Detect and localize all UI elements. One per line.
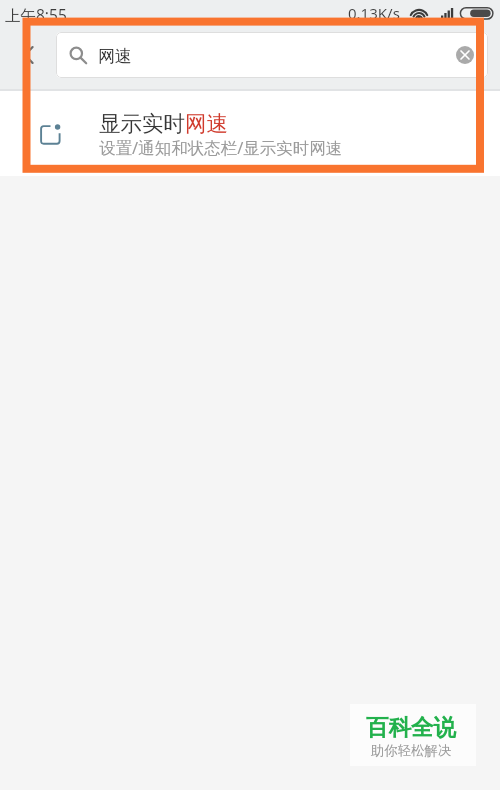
button[interactable]: 网速: [56, 32, 488, 78]
button[interactable]: Clear search: [456, 46, 474, 64]
staticText: 显示实时网速: [99, 110, 228, 137]
staticText: 百科全说: [366, 713, 456, 741]
staticText: 0.13K/s: [348, 3, 400, 23]
button[interactable]: Back: [12, 38, 46, 72]
staticText: 上午8:55: [5, 4, 67, 25]
staticText: 助你轻松解决: [371, 742, 452, 759]
staticText: 网速: [98, 46, 132, 67]
button[interactable]: 显示实时网速: [0, 91, 500, 176]
staticText: 设置/通知和状态栏/显示实时网速: [99, 136, 343, 159]
